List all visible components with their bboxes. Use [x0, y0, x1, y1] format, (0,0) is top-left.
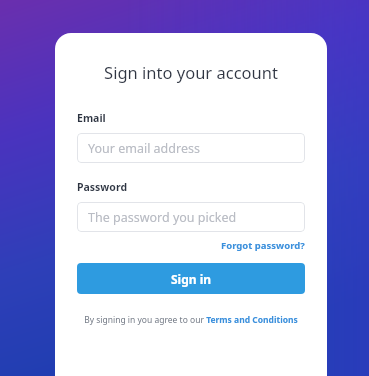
staticText: Sign into your account [77, 61, 305, 83]
staticText: The password you picked [88, 209, 237, 226]
button[interactable]: The password you picked [77, 202, 305, 232]
staticText: Sign in [171, 271, 212, 287]
button[interactable]: By signing in you agree to our Terms and… [77, 314, 305, 326]
staticText: By signing in you agree to our Terms and… [84, 314, 298, 326]
button[interactable]: Forgot password? [221, 239, 305, 252]
staticText: Email [77, 111, 106, 125]
staticText: Forgot password? [221, 239, 305, 252]
staticText: Your email address [88, 140, 200, 157]
button[interactable]: Your email address [77, 133, 305, 163]
button[interactable]: Sign in [77, 263, 305, 294]
staticText: Password [77, 180, 128, 194]
